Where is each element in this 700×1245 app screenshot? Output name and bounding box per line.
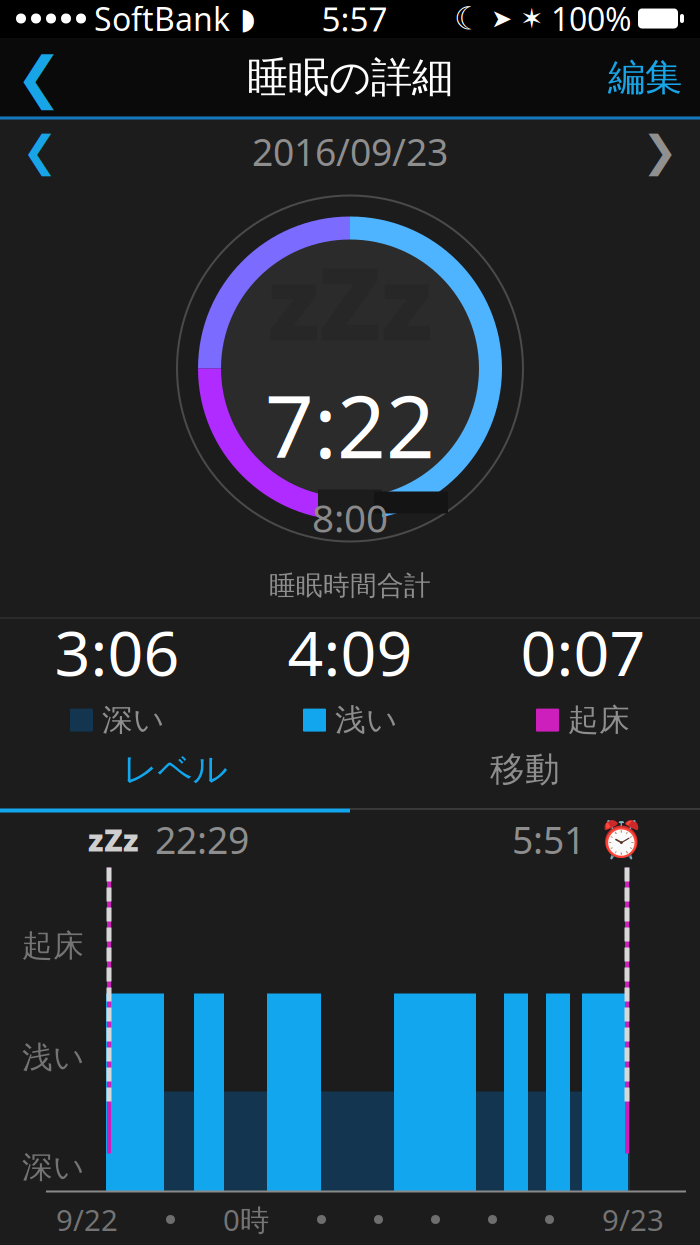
staticText: 5:57: [321, 0, 387, 41]
staticText: 9/22: [56, 1200, 118, 1239]
staticText: 22:29: [155, 815, 249, 864]
staticText: 9/23: [602, 1200, 664, 1239]
staticText: 起床: [568, 701, 630, 739]
staticText: 編集: [608, 55, 682, 100]
staticText: 7:22: [265, 368, 435, 482]
staticText: 浅い: [22, 1039, 84, 1076]
staticText: 100%: [551, 0, 632, 40]
staticText: ☾: [454, 0, 483, 37]
staticText: ◗: [240, 2, 255, 35]
staticText: 0:07: [520, 610, 645, 693]
staticText: 深い: [22, 1148, 84, 1186]
staticText: 起床: [22, 927, 84, 965]
staticText: 2016/09/23: [252, 127, 448, 176]
staticText: SoftBank: [94, 0, 230, 40]
button[interactable]: 前の日: [0, 119, 80, 183]
staticText: ➤: [491, 4, 512, 33]
staticText: 3:06: [54, 610, 179, 693]
button[interactable]: 編集: [590, 38, 700, 116]
staticText: 深い: [102, 701, 164, 739]
staticText: ❯: [642, 127, 678, 176]
staticText: レベル: [122, 748, 227, 791]
staticText: ✶: [520, 3, 543, 34]
staticText: ❮: [15, 46, 62, 109]
staticText: ⏰: [599, 819, 644, 860]
staticText: 睡眠時間合計: [269, 569, 431, 602]
button[interactable]: レベル: [0, 730, 350, 808]
staticText: ❮: [22, 127, 58, 176]
staticText: 0時: [223, 1200, 269, 1239]
button[interactable]: 次の日: [620, 119, 700, 183]
button[interactable]: 移動: [350, 730, 700, 808]
staticText: 睡眠の詳細: [247, 52, 453, 103]
staticText: 移動: [490, 748, 560, 791]
staticText: 8:00: [312, 492, 388, 543]
staticText: 5:51: [512, 815, 585, 864]
button[interactable]: 戻る: [0, 38, 78, 116]
staticText: zZz: [88, 819, 139, 860]
staticText: 浅い: [335, 701, 397, 739]
staticText: 4:09: [287, 610, 412, 693]
staticText: zZz: [268, 234, 432, 368]
